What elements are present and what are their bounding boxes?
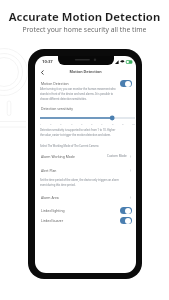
button[interactable]: Alert Plan: [35, 166, 136, 174]
button[interactable]: Alarm Area: [35, 193, 136, 201]
staticText: 8: [112, 122, 114, 125]
staticText: Detection sensitivity is supported to se…: [40, 128, 116, 131]
staticText: 10: [132, 122, 135, 125]
staticText: 5: [81, 122, 83, 125]
staticText: 2: [50, 122, 52, 125]
staticText: choose different detection sensitivities…: [40, 97, 87, 100]
staticText: Custom Mode: [107, 154, 127, 158]
button[interactable]: Back: [36, 66, 48, 78]
staticText: 10:37: [42, 59, 53, 65]
staticText: 9: [122, 122, 124, 125]
staticText: Select The Working Mode of The Current C…: [40, 144, 99, 147]
staticText: event during this time period.: [40, 183, 76, 186]
staticText: the value, easier to trigger the motion …: [40, 133, 111, 136]
staticText: Motion Detection: [35, 69, 136, 74]
staticText: 3: [60, 122, 62, 125]
staticText: Motion Detection: [41, 81, 69, 86]
staticText: After turning it on, you can monitor the…: [40, 87, 116, 90]
staticText: 1: [40, 122, 42, 125]
staticText: Set the time period of the alarm, the de…: [40, 178, 119, 181]
button[interactable]: Alarm Working Mode: [35, 152, 136, 160]
button[interactable]: Linked lighting: [35, 206, 136, 214]
staticText: Linked buzzer: [41, 218, 64, 223]
staticText: Protect your home security all the time: [0, 25, 169, 34]
staticText: Alert Plan: [41, 168, 57, 173]
staticText: Accurate Motion Detection: [0, 9, 169, 24]
staticText: 7: [101, 122, 103, 125]
staticText: 6: [91, 122, 93, 125]
button[interactable]: Motion Detection: [35, 79, 136, 87]
staticText: stands in front of the device and send a…: [40, 92, 114, 95]
button[interactable]: Linked buzzer: [35, 216, 136, 224]
staticText: Detection sensitivity: [41, 106, 74, 111]
staticText: Alarm Area: [41, 195, 59, 200]
staticText: Linked lighting: [41, 208, 65, 213]
staticText: Alarm Working Mode: [41, 154, 75, 159]
staticText: 4: [71, 122, 73, 125]
